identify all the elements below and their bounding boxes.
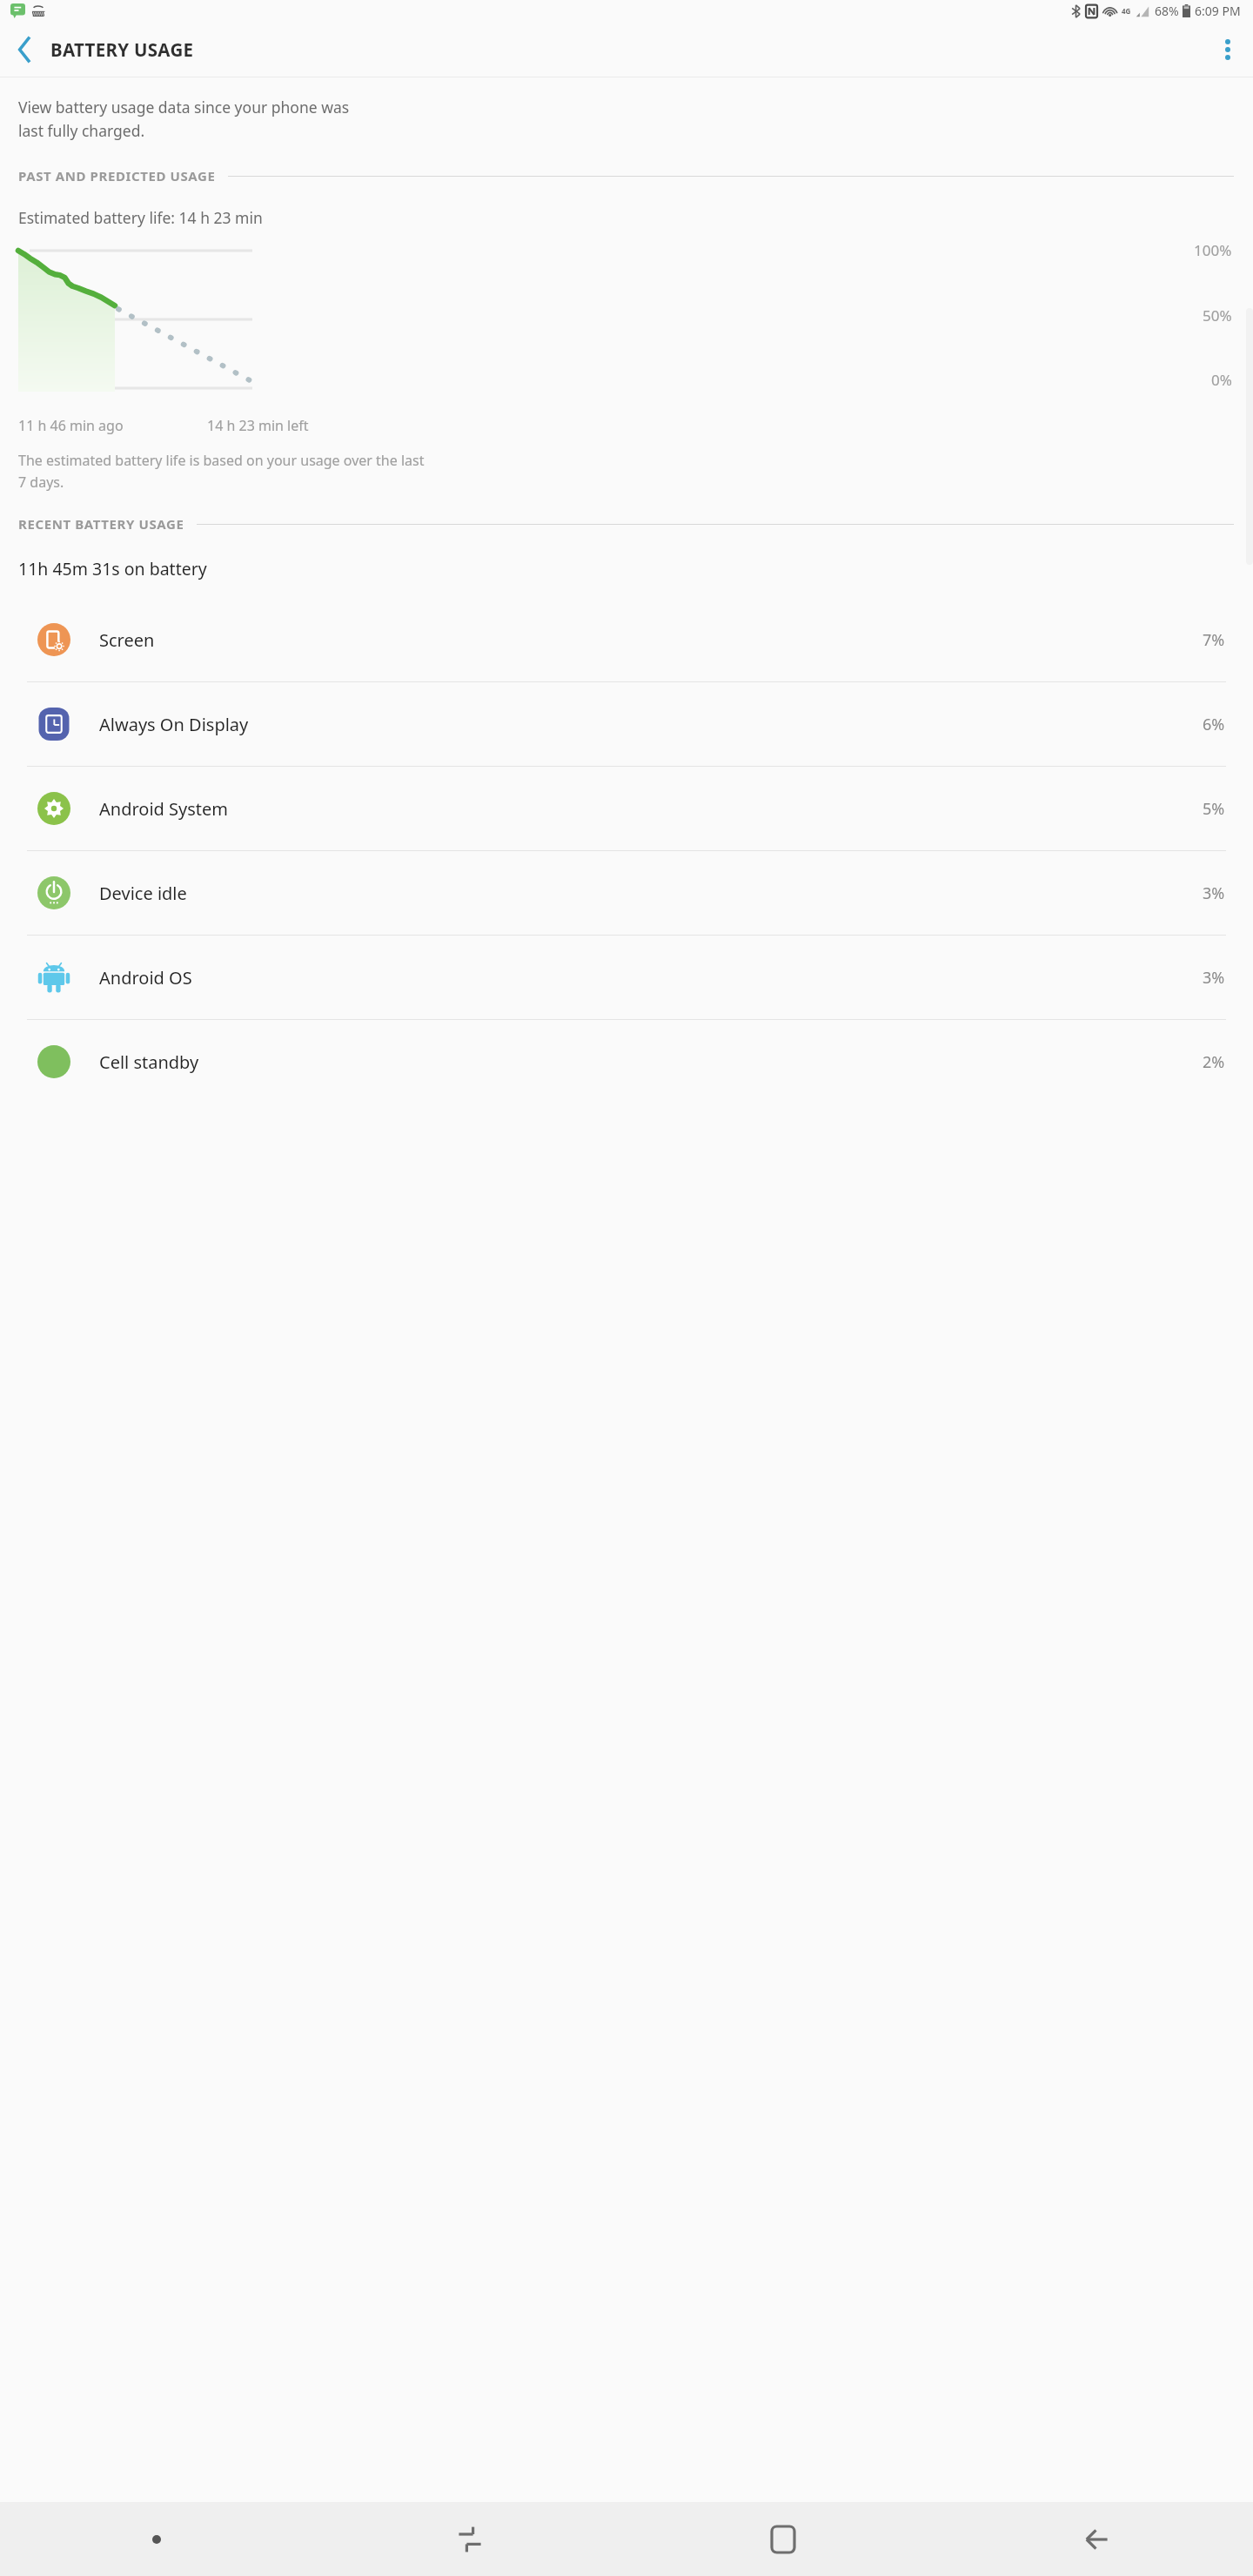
staticText: 6:09 PM [1195, 3, 1241, 19]
staticText: 11 h 46 min ago [18, 416, 124, 435]
staticText: 7% [1203, 629, 1225, 651]
button[interactable]: Home [626, 2502, 940, 2576]
staticText: Screen [99, 628, 155, 652]
staticText: 50% [1203, 305, 1232, 325]
staticText: 68% [1155, 3, 1179, 19]
button[interactable]: Always On Display [0, 682, 1253, 767]
staticText: 11h 45m 31s on battery [18, 557, 207, 580]
staticText: 0% [1211, 370, 1232, 390]
staticText: Device idle [99, 882, 187, 905]
button[interactable]: Menu [0, 2502, 313, 2576]
button[interactable]: Screen [0, 598, 1253, 682]
staticText: Android System [99, 797, 229, 821]
staticText: Always On Display [99, 713, 249, 736]
staticText: 5% [1203, 798, 1225, 820]
staticText: 3% [1203, 967, 1225, 989]
staticText: View battery usage data since your phone… [18, 97, 350, 141]
staticText: Estimated battery life: 14 h 23 min [18, 207, 263, 228]
staticText: PAST AND PREDICTED USAGE [18, 167, 216, 184]
staticText: 4G [1122, 6, 1131, 16]
staticText: RECENT BATTERY USAGE [18, 515, 184, 533]
button[interactable]: Recent apps [313, 2502, 626, 2576]
button[interactable]: Android System [0, 767, 1253, 851]
staticText: Android OS [99, 966, 192, 989]
button[interactable]: Android OS [0, 936, 1253, 1020]
staticText: 2% [1203, 1051, 1225, 1073]
button[interactable]: Cell standby [37, 1020, 1225, 1104]
button[interactable]: Back [0, 22, 49, 77]
button[interactable]: More options [1203, 22, 1253, 77]
staticText: 3% [1203, 882, 1225, 904]
staticText: Cell standby [99, 1050, 199, 1074]
staticText: 14 h 23 min left [207, 416, 309, 435]
staticText: 6% [1203, 714, 1225, 735]
staticText: 100% [1194, 240, 1232, 260]
staticText: BATTERY USAGE [50, 37, 194, 62]
staticText: The estimated battery life is based on y… [18, 451, 425, 491]
button[interactable]: Back [940, 2502, 1253, 2576]
button[interactable]: Device idle [0, 851, 1253, 936]
